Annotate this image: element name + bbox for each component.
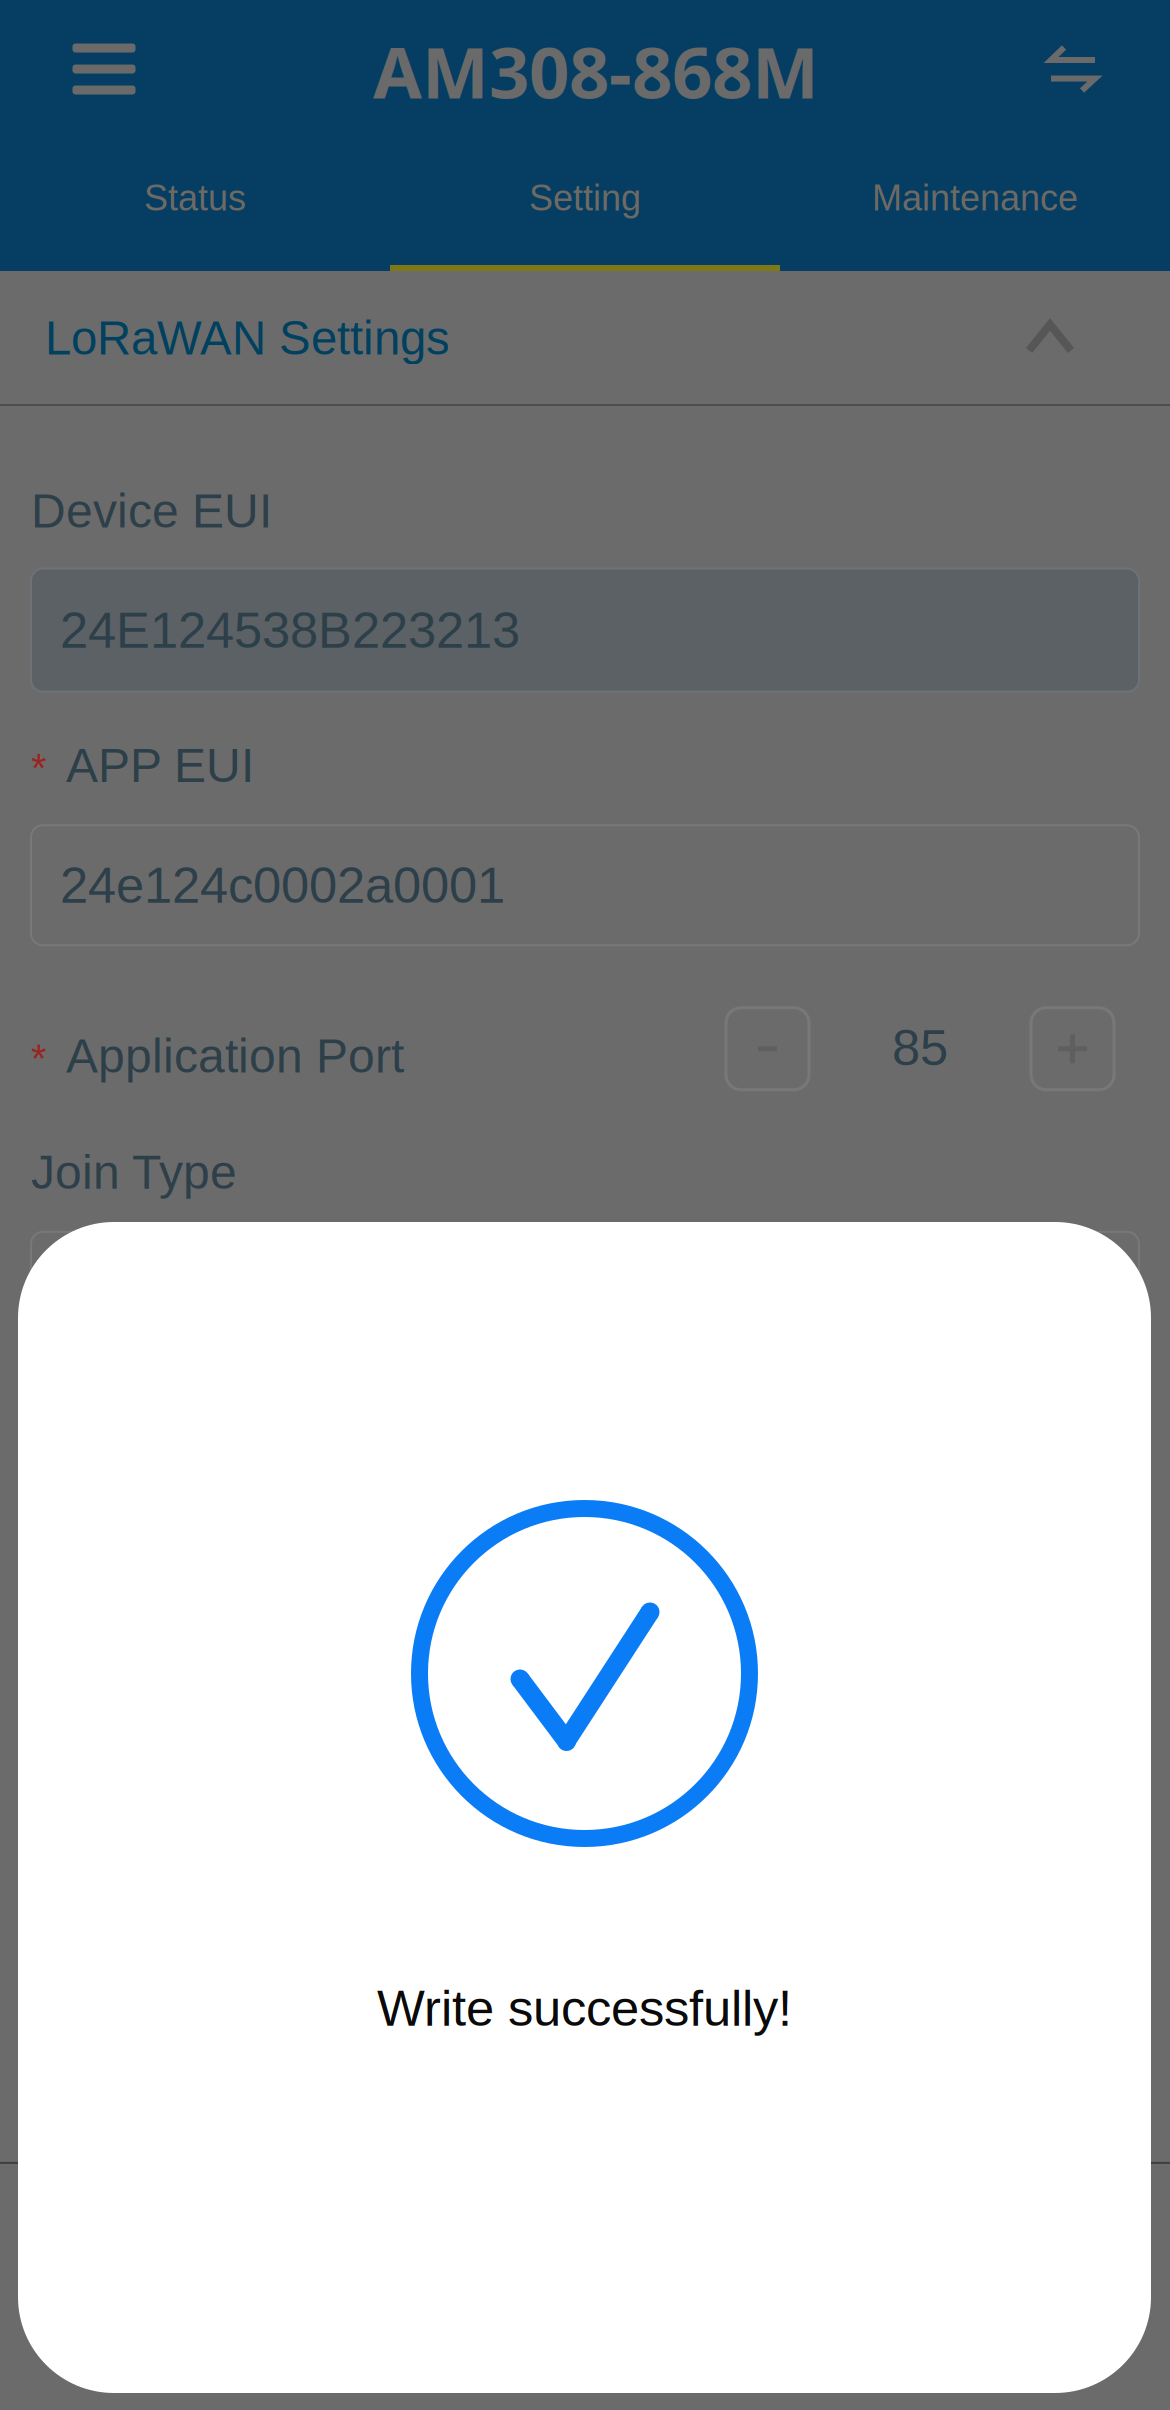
button[interactable]: Maintenance: [780, 138, 1170, 271]
button[interactable]: LoRaWAN Settings: [0, 271, 1170, 404]
staticText: APP EUI: [66, 739, 254, 792]
staticText: 85: [892, 1019, 948, 1076]
staticText: *: [31, 746, 47, 791]
staticText: Application Port: [66, 1029, 404, 1082]
button[interactable]: Decrease: [726, 1008, 809, 1090]
staticText: *: [31, 1036, 47, 1081]
button[interactable]: Setting: [390, 138, 780, 271]
button[interactable]: Menu: [62, 33, 146, 105]
staticText: Setting: [529, 178, 641, 218]
button[interactable]: Increase: [1031, 1008, 1114, 1090]
button[interactable]: Switch device: [1048, 44, 1098, 93]
button[interactable]: Status: [0, 138, 390, 271]
staticText: Status: [144, 178, 246, 218]
staticText: Join Type: [31, 1145, 237, 1199]
staticText: Write successfully!: [377, 1980, 792, 2037]
staticText: AM308-868M: [373, 23, 819, 119]
staticText: Device EUI: [31, 484, 272, 538]
staticText: LoRaWAN Settings: [45, 312, 450, 364]
staticText: 24e124c0002a0001: [60, 857, 505, 913]
staticText: 24E124538B223213: [60, 602, 520, 658]
staticText: Maintenance: [872, 178, 1078, 218]
